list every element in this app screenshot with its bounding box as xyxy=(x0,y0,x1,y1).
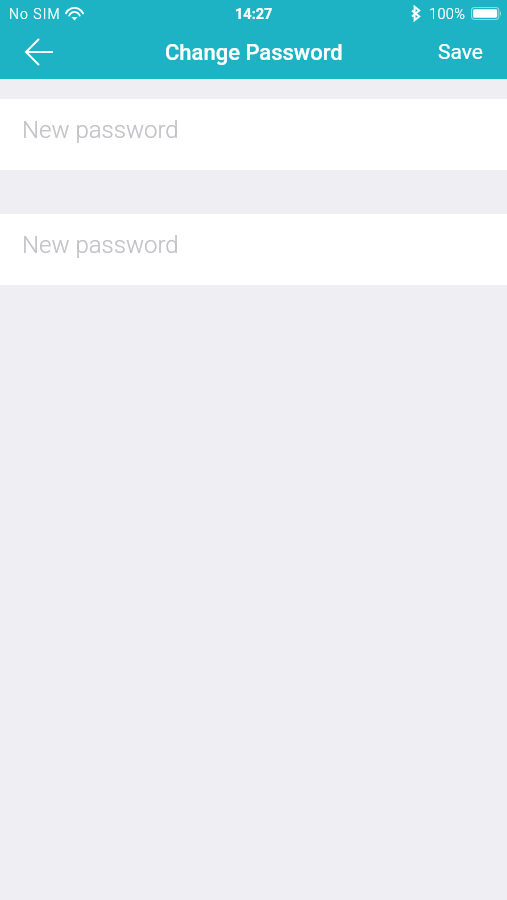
button[interactable]: Save xyxy=(414,26,507,79)
button[interactable]: New password xyxy=(0,214,507,285)
staticText: No SIM xyxy=(9,6,61,22)
staticText: Change Password xyxy=(165,40,343,66)
staticText: New password xyxy=(22,231,179,259)
staticText: New password xyxy=(22,116,179,144)
staticText: 100% xyxy=(429,6,466,23)
staticText: 14:27 xyxy=(235,6,273,23)
button[interactable]: Back xyxy=(0,26,68,79)
staticText: Save xyxy=(438,40,483,65)
button[interactable]: New password xyxy=(0,99,507,170)
